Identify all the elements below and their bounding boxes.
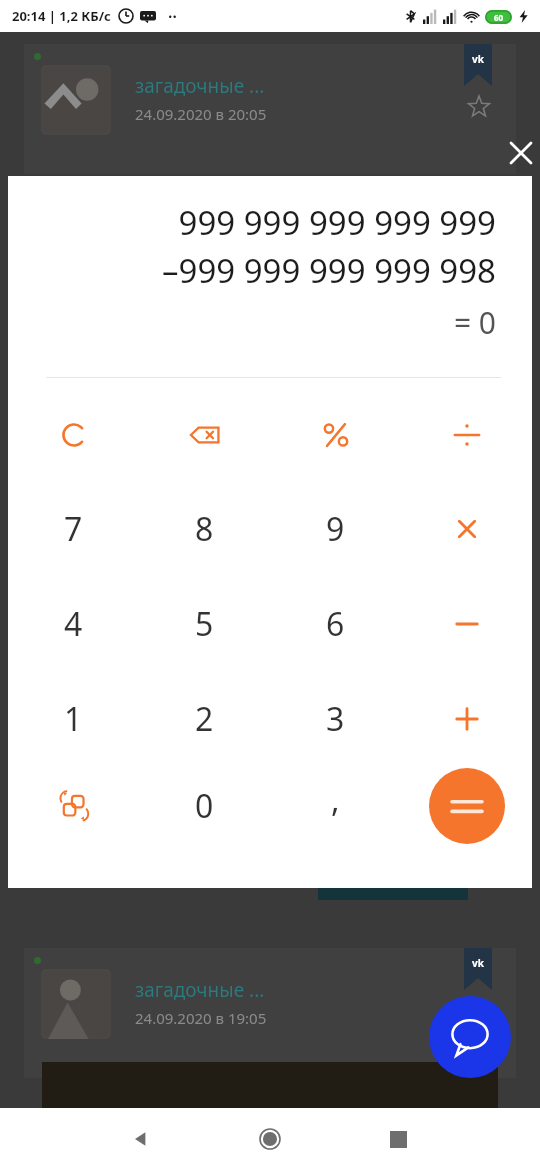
- staticText: 60: [494, 12, 504, 23]
- button[interactable]: 4: [8, 577, 139, 671]
- button[interactable]: Percent: [270, 388, 401, 482]
- staticText: 24.09.2020 в 20:05: [135, 104, 267, 124]
- button[interactable]: Multiply: [401, 482, 532, 576]
- staticText: vk: [472, 956, 484, 970]
- staticText: загадочные ...: [135, 73, 265, 99]
- staticText: ,: [331, 778, 340, 822]
- button[interactable]: 2: [139, 672, 270, 766]
- button[interactable]: Back: [76, 1108, 205, 1170]
- staticText: 6: [326, 602, 345, 646]
- staticText: 2: [195, 697, 214, 741]
- staticText: 999 999 999 999 999: [8, 200, 496, 245]
- staticText: 1: [64, 697, 83, 741]
- button[interactable]: Recents: [334, 1108, 463, 1170]
- button[interactable]: 3: [270, 672, 401, 766]
- button[interactable]: ,: [270, 759, 401, 853]
- staticText: 4: [64, 602, 83, 646]
- button[interactable]: Home: [205, 1108, 334, 1170]
- button[interactable]: Close: [500, 132, 540, 174]
- staticText: загадочные ...: [135, 977, 265, 1003]
- staticText: 7: [64, 507, 83, 551]
- staticText: = 0: [8, 302, 496, 343]
- staticText: 20:14 | 1,2 КБ/с: [12, 7, 111, 25]
- button[interactable]: Backspace: [139, 388, 270, 482]
- staticText: 8: [195, 507, 214, 551]
- button[interactable]: 0: [139, 759, 270, 853]
- button[interactable]: Plus: [401, 672, 532, 766]
- button[interactable]: Minus: [401, 577, 532, 671]
- staticText: 9: [326, 507, 345, 551]
- button[interactable]: Divide: [401, 388, 532, 482]
- button[interactable]: Clear: [8, 388, 139, 482]
- button[interactable]: Equals: [429, 768, 505, 844]
- staticText: vk: [472, 52, 484, 66]
- button[interactable]: 1: [8, 672, 139, 766]
- staticText: 3: [326, 697, 345, 741]
- button[interactable]: 7: [8, 482, 139, 576]
- button[interactable]: 8: [139, 482, 270, 576]
- button[interactable]: 6: [270, 577, 401, 671]
- button[interactable]: загадочные ...: [24, 948, 516, 1078]
- button[interactable]: Unit converter: [8, 759, 139, 853]
- staticText: –999 999 999 999 998: [8, 248, 496, 293]
- staticText: 0: [195, 784, 214, 828]
- staticText: 5: [195, 602, 214, 646]
- button[interactable]: 9: [270, 482, 401, 576]
- button[interactable]: загадочные ...: [24, 44, 516, 174]
- button[interactable]: Messages: [429, 996, 511, 1078]
- staticText: 24.09.2020 в 19:05: [135, 1008, 267, 1028]
- button[interactable]: 5: [139, 577, 270, 671]
